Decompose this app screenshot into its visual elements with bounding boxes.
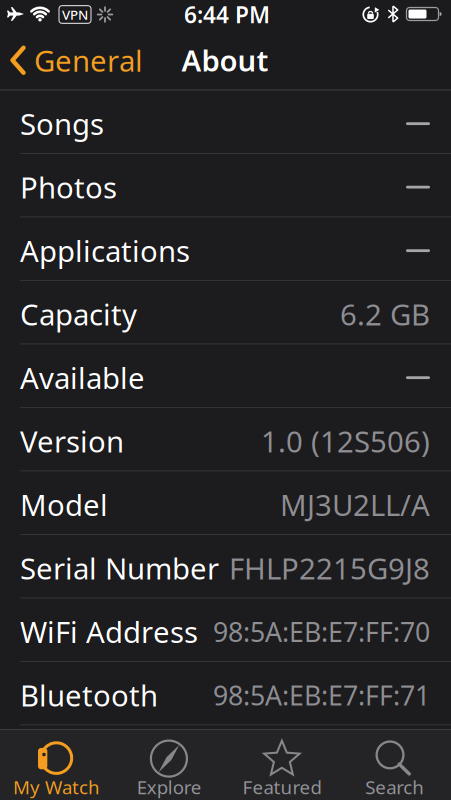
staticText: 6:44 PM [184, 0, 270, 29]
staticText: 98:5A:EB:E7:FF:70 [213, 614, 430, 649]
staticText: WiFi Address [20, 612, 198, 651]
button[interactable]: Search [338, 730, 451, 800]
staticText: Photos [20, 168, 117, 207]
staticText: Bluetooth [20, 676, 158, 715]
staticText: Search [365, 775, 424, 799]
staticText: Songs [20, 104, 104, 143]
staticText: Capacity [20, 295, 137, 334]
staticText: Model [20, 485, 108, 524]
staticText: Available [20, 358, 145, 397]
staticText: 1.0 (12S506) [261, 422, 430, 461]
staticText: 6.2 GB [340, 295, 430, 334]
staticText: Applications [20, 231, 190, 270]
button[interactable]: Explore [113, 730, 226, 800]
staticText: VPN [62, 6, 88, 23]
staticText: 98:5A:EB:E7:FF:71 [213, 677, 430, 713]
staticText: Featured [242, 775, 321, 799]
button[interactable]: Featured [225, 730, 338, 800]
staticText: General [34, 41, 143, 80]
staticText: About [181, 40, 268, 79]
staticText: Serial Number [20, 549, 219, 588]
staticText: MJ3U2LL/A [280, 485, 430, 524]
staticText: Explore [137, 775, 202, 799]
button[interactable]: General [0, 41, 143, 80]
staticText: Version [20, 422, 124, 461]
staticText: My Watch [13, 775, 100, 799]
staticText: FHLP2215G9J8 [229, 549, 430, 588]
button[interactable]: My Watch [0, 730, 113, 800]
